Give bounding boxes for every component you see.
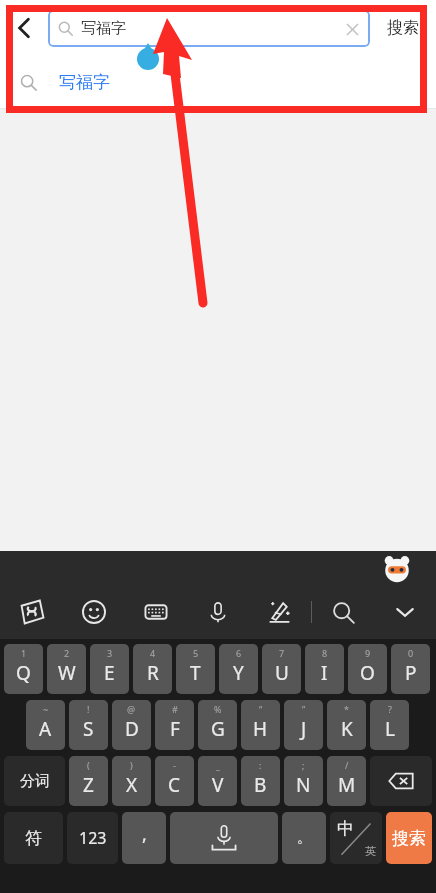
staticText: %	[214, 703, 222, 715]
button[interactable]: Clear text	[340, 17, 364, 41]
button[interactable]: (	[69, 756, 108, 806]
button[interactable]: 123	[67, 812, 118, 864]
staticText: Q	[16, 660, 31, 686]
button[interactable]: 2	[47, 644, 86, 694]
button[interactable]: ;	[284, 756, 323, 806]
staticText: H	[253, 716, 268, 742]
staticText: :	[259, 759, 262, 771]
staticText: #	[172, 703, 178, 715]
button[interactable]: Chinese English toggle	[330, 812, 382, 864]
staticText: T	[190, 660, 201, 686]
staticText: Y	[233, 660, 244, 686]
staticText: “	[259, 703, 263, 715]
staticText: @	[127, 703, 136, 715]
staticText: ~	[43, 703, 49, 715]
button[interactable]: %	[198, 700, 237, 750]
button[interactable]: Keyboard layout	[125, 585, 187, 639]
staticText: J	[301, 716, 307, 742]
button[interactable]: 5	[176, 644, 215, 694]
staticText: 0	[408, 647, 414, 659]
button[interactable]: *	[327, 700, 366, 750]
staticText: 符	[25, 828, 42, 849]
staticText: 2	[64, 647, 70, 659]
button[interactable]: 写福字	[48, 10, 370, 47]
staticText: U	[275, 660, 289, 686]
staticText: (	[87, 759, 90, 771]
button[interactable]: ,	[122, 812, 166, 864]
button[interactable]: 分词	[4, 756, 65, 806]
staticText: -	[173, 759, 176, 771]
staticText: Z	[83, 772, 94, 798]
button[interactable]: 4	[133, 644, 172, 694]
staticText: 写福字	[59, 72, 110, 93]
staticText: 搜索	[387, 18, 419, 38]
button[interactable]: Voice input	[187, 585, 249, 639]
button[interactable]: _	[198, 756, 237, 806]
staticText: G	[211, 716, 225, 742]
staticText: X	[126, 772, 138, 798]
staticText: R	[147, 660, 159, 686]
staticText: _	[216, 759, 220, 771]
button[interactable]: Emoji	[63, 585, 125, 639]
staticText: V	[212, 772, 224, 798]
button[interactable]: 1	[4, 644, 43, 694]
staticText: S	[83, 716, 94, 742]
button[interactable]: Search	[312, 585, 374, 639]
staticText: M	[338, 772, 356, 798]
staticText: 。	[297, 829, 311, 847]
button[interactable]: 7	[262, 644, 301, 694]
staticText: )	[130, 759, 133, 771]
button[interactable]: 写福字	[0, 56, 436, 108]
staticText: 123	[79, 827, 107, 849]
button[interactable]: 0	[391, 644, 430, 694]
staticText: 6	[236, 647, 242, 659]
staticText: 写福字	[81, 19, 126, 38]
button[interactable]: @	[112, 700, 151, 750]
button[interactable]: )	[112, 756, 151, 806]
staticText: 7	[279, 647, 285, 659]
staticText: *	[344, 703, 349, 715]
staticText: I	[321, 660, 328, 686]
button[interactable]: 搜索	[386, 812, 432, 864]
staticText: !	[87, 703, 90, 715]
button[interactable]: ”	[284, 700, 323, 750]
button[interactable]: 。	[282, 812, 326, 864]
staticText: K	[341, 716, 353, 742]
staticText: ,	[142, 822, 147, 847]
button[interactable]: #	[155, 700, 194, 750]
button[interactable]: Back	[0, 0, 48, 56]
button[interactable]: Space, voice input	[170, 812, 278, 864]
button[interactable]: 搜索	[370, 0, 436, 56]
staticText: 4	[150, 647, 156, 659]
staticText: 8	[322, 647, 328, 659]
button[interactable]: Handwriting	[249, 585, 311, 639]
button[interactable]: -	[155, 756, 194, 806]
button[interactable]: Backspace	[370, 756, 432, 806]
button[interactable]: 6	[219, 644, 258, 694]
staticText: ?	[388, 703, 392, 715]
button[interactable]: 符	[4, 812, 63, 864]
staticText: ;	[302, 759, 305, 771]
staticText: A	[39, 716, 52, 742]
staticText: 5	[193, 647, 199, 659]
staticText: 英	[365, 844, 376, 858]
button[interactable]: Assistant	[383, 555, 411, 583]
staticText: 分词	[20, 772, 50, 791]
button[interactable]: 9	[348, 644, 387, 694]
staticText: N	[296, 772, 311, 798]
button[interactable]: 8	[305, 644, 344, 694]
staticText: 搜索	[392, 828, 426, 849]
button[interactable]: ~	[26, 700, 65, 750]
button[interactable]: Hide keyboard	[374, 585, 436, 639]
button[interactable]: Sogou input	[0, 585, 63, 639]
button[interactable]: :	[241, 756, 280, 806]
button[interactable]: “	[241, 700, 280, 750]
staticText: B	[254, 772, 267, 798]
staticText: /	[345, 759, 349, 771]
button[interactable]: ?	[370, 700, 409, 750]
staticText: C	[168, 772, 181, 798]
button[interactable]: !	[69, 700, 108, 750]
button[interactable]: /	[327, 756, 366, 806]
staticText: W	[58, 660, 76, 686]
button[interactable]: 3	[90, 644, 129, 694]
